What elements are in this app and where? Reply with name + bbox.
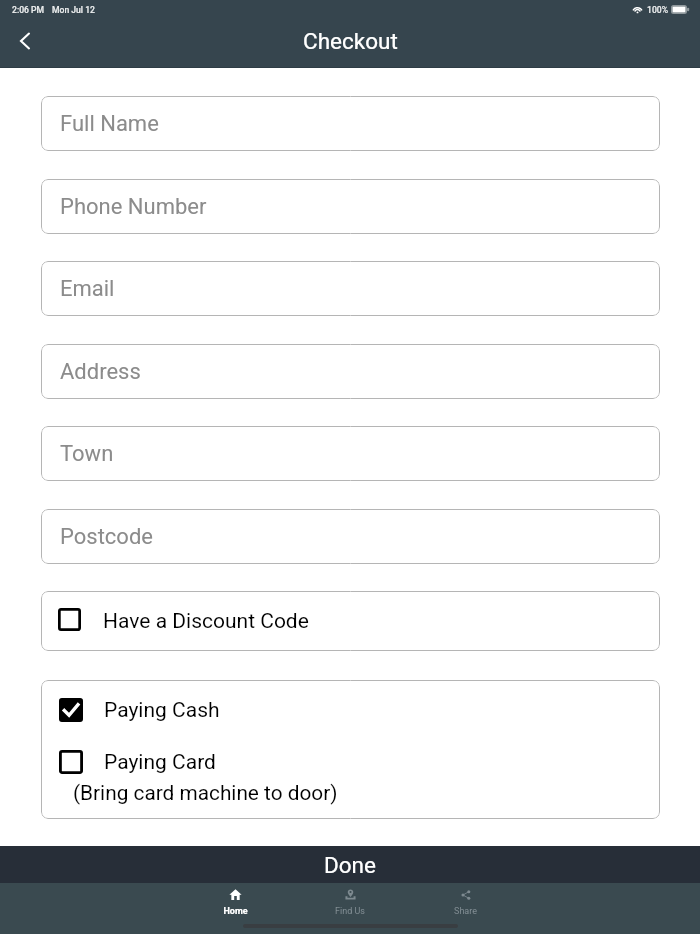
button[interactable]: Home — [206, 883, 264, 934]
staticText: Email — [60, 276, 115, 302]
button[interactable]: Address — [41, 344, 660, 399]
button[interactable]: Back — [2, 18, 48, 64]
staticText: Postcode — [60, 524, 153, 550]
staticText: 2:06 PM — [12, 5, 45, 15]
staticText: Paying Card — [104, 750, 216, 775]
button[interactable]: Postcode — [41, 509, 660, 564]
staticText: Share — [454, 906, 477, 917]
staticText: Phone Number — [60, 194, 207, 220]
staticText: Find Us — [335, 906, 365, 917]
staticText: Done — [324, 852, 376, 878]
button[interactable]: Find Us — [321, 883, 379, 934]
button[interactable]: Town — [41, 426, 660, 481]
staticText: (Bring card machine to door) — [73, 781, 338, 805]
button[interactable]: Share — [436, 883, 494, 934]
staticText: Mon Jul 12 — [52, 5, 95, 15]
button[interactable]: Done — [0, 846, 700, 883]
staticText: Home — [223, 906, 248, 917]
staticText: Have a Discount Code — [103, 609, 309, 634]
button[interactable]: Have a Discount Code — [41, 591, 660, 651]
staticText: Checkout — [303, 28, 398, 54]
staticText: Town — [60, 441, 114, 467]
staticText: Address — [60, 359, 141, 385]
button[interactable]: Full Name — [41, 96, 660, 151]
button[interactable]: Paying Cash — [41, 688, 660, 736]
staticText: Paying Cash — [104, 698, 220, 723]
button[interactable]: Phone Number — [41, 179, 660, 234]
button[interactable]: Paying Card — [41, 740, 660, 812]
staticText: 100% — [647, 5, 668, 15]
staticText: Full Name — [60, 111, 159, 137]
button[interactable]: Email — [41, 261, 660, 316]
